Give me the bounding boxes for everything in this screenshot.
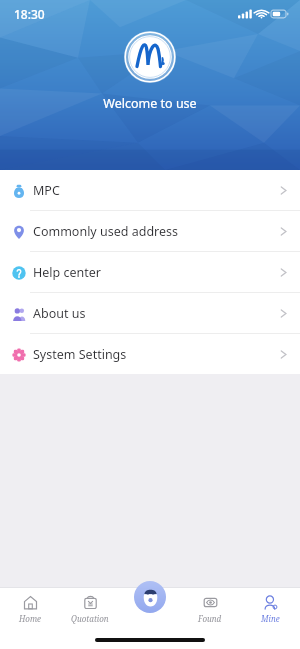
button[interactable]: Assistant: [134, 581, 166, 613]
button[interactable]: MPC: [0, 170, 300, 210]
staticText: System Settings: [33, 346, 127, 363]
staticText: MPC: [33, 182, 60, 199]
button[interactable]: System Settings: [0, 334, 300, 374]
staticText: About us: [33, 305, 86, 322]
button[interactable]: Commonly used address: [0, 211, 300, 251]
staticText: 18:30: [14, 6, 45, 22]
staticText: Mine: [261, 613, 280, 624]
button[interactable]: About us: [0, 293, 300, 333]
button[interactable]: Help center: [0, 252, 300, 292]
button[interactable]: Found: [180, 588, 240, 631]
button[interactable]: Mine: [240, 588, 300, 631]
staticText: Quotation: [71, 613, 109, 624]
button[interactable]: Home: [0, 588, 60, 631]
staticText: Home: [19, 613, 42, 624]
staticText: Welcome to use: [103, 95, 197, 112]
staticText: Found: [198, 613, 222, 624]
staticText: Commonly used address: [33, 223, 179, 240]
staticText: Help center: [33, 264, 101, 281]
button[interactable]: Quotation: [60, 588, 120, 631]
